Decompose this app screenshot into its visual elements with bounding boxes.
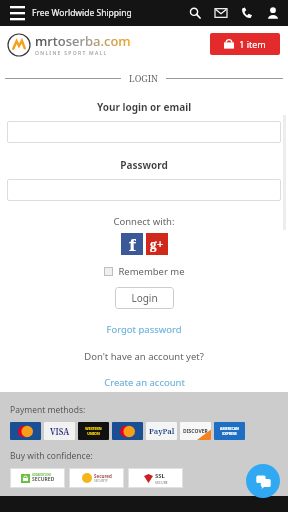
- staticText: Buy with confidence:: [10, 450, 93, 462]
- staticText: Payment methods:: [10, 404, 86, 416]
- staticText: VISA: [50, 426, 70, 437]
- staticText: Password: [0, 158, 288, 172]
- staticText: Free Worldwide Shipping: [32, 7, 132, 19]
- button[interactable]: GODADDY.COM: [10, 468, 65, 488]
- staticText: SSL: [155, 472, 165, 480]
- staticText: Your login or email: [0, 100, 288, 114]
- staticText: GODADDY.COM: [32, 473, 51, 476]
- button[interactable]: WESTERN UNION: [78, 422, 109, 440]
- staticText: 1 item: [239, 38, 266, 50]
- button[interactable]: Menu: [7, 3, 27, 23]
- staticText: LOGIN: [129, 72, 158, 84]
- button[interactable]: Remember me: [104, 265, 185, 278]
- staticText: Forgot password: [106, 323, 182, 336]
- staticText: SECURITY: [94, 479, 108, 483]
- staticText: Connect with:: [0, 215, 288, 228]
- button[interactable]: Messages: [213, 5, 229, 21]
- button[interactable]: SSL: [128, 468, 183, 488]
- staticText: Secured: [94, 473, 112, 479]
- button[interactable]: DISCOVER: [180, 422, 211, 440]
- staticText: AMERICAN EXPRESS: [220, 426, 239, 436]
- staticText: SECURED: [32, 476, 55, 483]
- button[interactable]: 1 item: [210, 33, 280, 55]
- staticText: O N L I N E S P O R T M A L L: [35, 50, 107, 57]
- staticText: mrtoserba.com: [35, 32, 131, 50]
- button[interactable]: Facebook login: [121, 233, 143, 255]
- button[interactable]: Login: [115, 287, 174, 309]
- staticText: f: [129, 233, 136, 255]
- button[interactable]: mrtoserba.com: [7, 32, 131, 57]
- button[interactable]: AMERICAN EXPRESS: [214, 422, 245, 440]
- button[interactable]: Search: [187, 5, 203, 21]
- button[interactable]: Chat: [246, 464, 280, 498]
- button[interactable]: [10, 422, 41, 440]
- button[interactable]: Account: [265, 5, 281, 21]
- staticText: Create an account: [104, 376, 185, 389]
- button[interactable]: PayPal: [146, 422, 177, 440]
- button[interactable]: VISA: [44, 422, 75, 440]
- button[interactable]: Call: [239, 5, 255, 21]
- button[interactable]: [112, 422, 143, 440]
- button[interactable]: [7, 121, 281, 143]
- staticText: Login: [131, 291, 158, 305]
- button[interactable]: Forgot password: [102, 322, 186, 337]
- staticText: PayPal: [149, 426, 175, 436]
- staticText: DISCOVER: [183, 428, 208, 435]
- button[interactable]: [7, 179, 281, 201]
- staticText: g+: [150, 236, 164, 252]
- button[interactable]: Create an account: [100, 375, 189, 390]
- button[interactable]: Google plus login: [146, 233, 168, 255]
- staticText: Remember me: [118, 265, 185, 278]
- staticText: Don't have an account yet?: [0, 350, 288, 363]
- button[interactable]: Secured: [69, 468, 124, 488]
- staticText: WESTERN UNION: [85, 426, 102, 436]
- staticText: SECURE: [155, 480, 168, 485]
